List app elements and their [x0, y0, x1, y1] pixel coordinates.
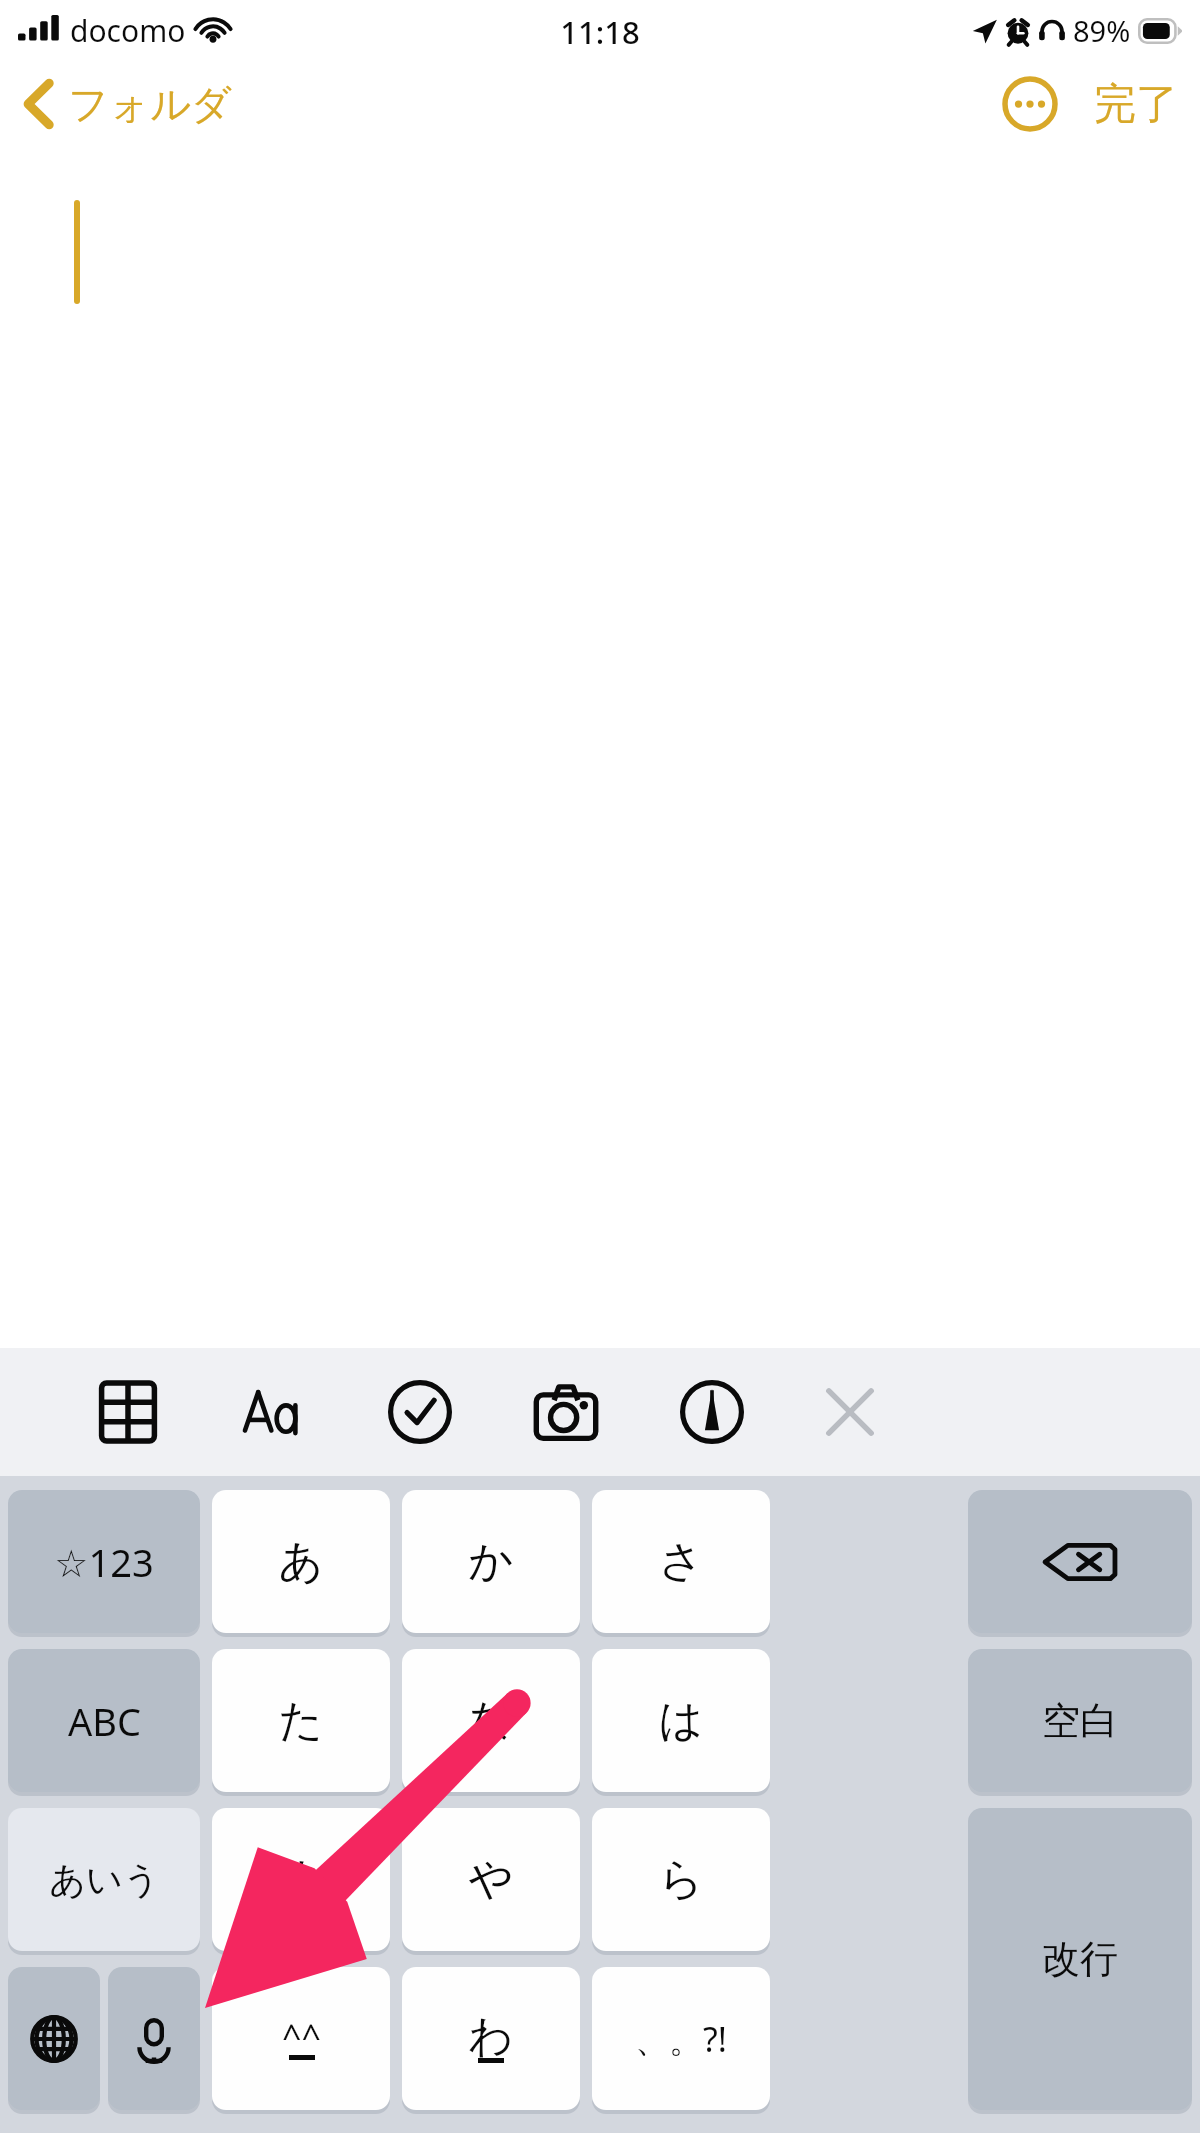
staticText: な — [468, 1693, 514, 1748]
button[interactable]: あ — [212, 1490, 390, 1633]
button[interactable]: Camera — [518, 1357, 614, 1467]
staticText: ☆123 — [54, 1536, 154, 1588]
button[interactable]: フォルダ — [0, 70, 250, 138]
staticText: あ — [278, 1534, 324, 1589]
button[interactable]: Text format — [226, 1357, 322, 1467]
staticText: 、。?! — [635, 2016, 727, 2062]
button[interactable]: 空白 — [968, 1649, 1192, 1792]
button[interactable]: あいう — [8, 1808, 200, 1951]
staticText: 空白 — [1042, 1697, 1118, 1745]
staticText: 完了 — [1094, 78, 1178, 131]
button[interactable]: た — [212, 1649, 390, 1792]
button[interactable]: は — [592, 1649, 770, 1792]
button[interactable]: な — [402, 1649, 580, 1792]
button[interactable]: 完了 — [1072, 66, 1200, 143]
staticText: さ — [658, 1534, 704, 1589]
button[interactable]: ABC — [8, 1649, 200, 1792]
button[interactable]: ☆123 — [8, 1490, 200, 1633]
button[interactable]: Markup — [664, 1357, 760, 1467]
staticText: 11:18 — [560, 11, 640, 53]
staticText: 89% — [1073, 11, 1131, 50]
staticText: docomo — [70, 10, 186, 51]
button[interactable]: Switch keyboard — [8, 1967, 100, 2110]
staticText: た — [278, 1693, 324, 1748]
staticText: あいう — [49, 1857, 160, 1902]
staticText: フォルダ — [68, 79, 232, 129]
button[interactable]: More options — [988, 62, 1072, 146]
staticText: ^^ — [282, 2013, 321, 2059]
button[interactable]: Table — [80, 1357, 176, 1467]
staticText: ABC — [68, 1695, 141, 1747]
staticText: 改行 — [1042, 1935, 1118, 1983]
staticText: か — [468, 1534, 514, 1589]
button[interactable]: わ — [402, 1967, 580, 2110]
button[interactable]: Dictation — [108, 1967, 200, 2110]
staticText: ま — [278, 1852, 324, 1907]
button[interactable]: 、。?! — [592, 1967, 770, 2110]
button[interactable]: Delete — [968, 1490, 1192, 1633]
button[interactable]: ^^ — [212, 1967, 390, 2110]
button[interactable]: さ — [592, 1490, 770, 1633]
staticText: は — [658, 1693, 704, 1748]
staticText: わ — [468, 2009, 514, 2064]
button[interactable]: Close — [802, 1357, 898, 1467]
button[interactable]: 改行 — [968, 1808, 1192, 2110]
button[interactable]: ら — [592, 1808, 770, 1951]
staticText: や — [468, 1852, 514, 1907]
button[interactable]: ま — [212, 1808, 390, 1951]
button[interactable]: Checklist — [372, 1357, 468, 1467]
button[interactable]: か — [402, 1490, 580, 1633]
staticText: ら — [658, 1852, 704, 1907]
button[interactable]: や — [402, 1808, 580, 1951]
